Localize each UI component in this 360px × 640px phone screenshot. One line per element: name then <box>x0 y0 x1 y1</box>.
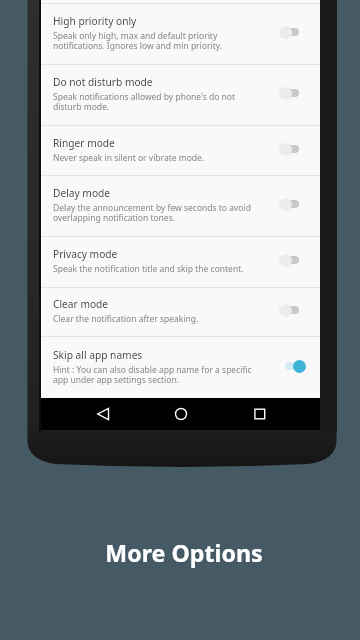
button[interactable] <box>279 302 305 318</box>
button[interactable]: Delay mode <box>41 176 320 236</box>
staticText: Do not disturb mode <box>53 75 153 89</box>
staticText: Clear mode <box>53 297 109 311</box>
staticText: Skip all app names <box>53 348 143 362</box>
button[interactable]: Back <box>95 406 111 422</box>
button[interactable]: High priority only <box>41 4 320 64</box>
staticText: Hint : You can also disable app name for… <box>53 364 262 386</box>
staticText: Delay mode <box>53 186 111 200</box>
button[interactable]: Clear mode <box>41 288 320 336</box>
button[interactable]: Recents <box>252 406 268 422</box>
staticText: Privacy mode <box>53 247 118 261</box>
button[interactable] <box>279 196 305 212</box>
button[interactable]: Skip all app names <box>41 337 320 398</box>
button[interactable] <box>279 24 305 40</box>
button[interactable] <box>279 141 305 157</box>
staticText: Never speak in silent or vibrate mode. <box>53 152 205 164</box>
staticText: Clear the notification after speaking. <box>53 313 199 325</box>
staticText: High priority only <box>53 14 137 28</box>
button[interactable] <box>279 252 305 268</box>
button[interactable]: Privacy mode <box>41 237 320 287</box>
staticText: Speak the notification title and skip th… <box>53 263 244 275</box>
staticText: Speak only high, max and default priorit… <box>53 30 262 52</box>
button[interactable]: Ringer mode <box>41 126 320 175</box>
button[interactable] <box>279 85 305 101</box>
button[interactable]: Home <box>173 406 189 422</box>
staticText: Ringer mode <box>53 136 115 150</box>
staticText: Delay the announcement by few seconds to… <box>53 202 262 224</box>
staticText: Speak notifications allowed by phone's d… <box>53 91 262 113</box>
button[interactable] <box>279 358 305 374</box>
staticText: More Options <box>105 537 263 569</box>
button[interactable]: Do not disturb mode <box>41 65 320 125</box>
